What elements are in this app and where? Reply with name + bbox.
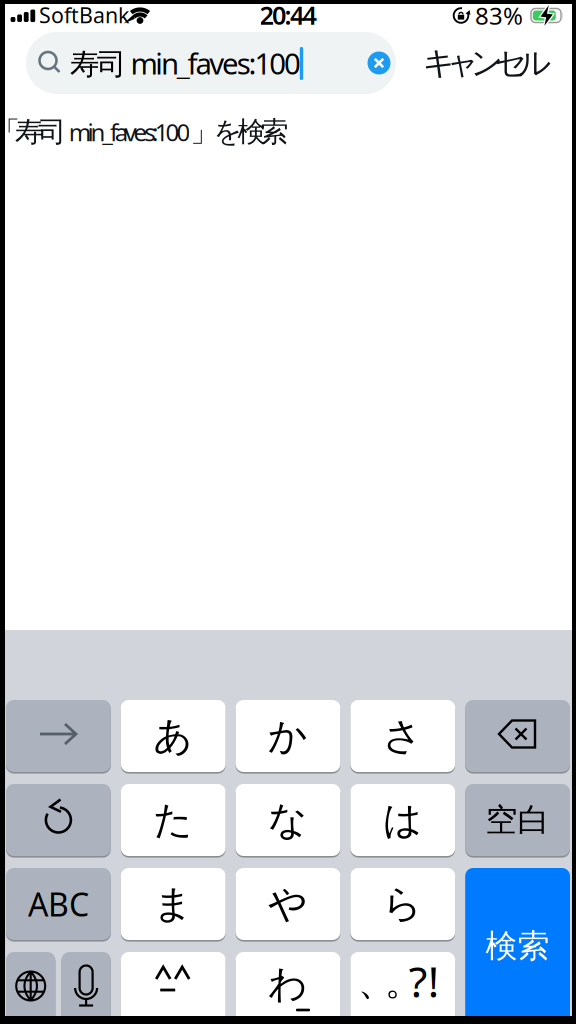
staticText: た <box>153 796 193 844</box>
staticText: ら <box>383 880 423 928</box>
button[interactable]: キャンセル <box>402 46 572 80</box>
button[interactable]: Confirm <box>6 699 111 773</box>
button[interactable]: わ <box>236 951 340 1024</box>
staticText: 空白 <box>486 800 550 840</box>
button[interactable]: な <box>236 783 340 857</box>
button[interactable]: 「寿司 <box>0 100 545 164</box>
staticText: わ <box>268 960 308 1008</box>
staticText: ABC <box>28 883 89 925</box>
staticText: 検索 <box>486 926 550 966</box>
button[interactable]: Dictation <box>61 951 111 1024</box>
button[interactable]: 検索テキストフィールド <box>26 32 396 94</box>
staticText: 20:44 <box>259 0 316 32</box>
staticText: や <box>268 880 308 928</box>
staticText: ?! <box>409 953 439 1009</box>
staticText: 「寿司 <box>0 115 66 149</box>
staticText: あ <box>153 712 193 760</box>
staticText: SoftBank <box>39 1 129 29</box>
button[interactable]: Clear text <box>367 51 390 74</box>
button[interactable]: あ <box>121 699 226 773</box>
button[interactable]: か <box>236 699 340 773</box>
staticText: は <box>383 796 423 844</box>
staticText: キャンセル <box>422 43 551 83</box>
button[interactable]: 、。 <box>350 951 455 1024</box>
staticText: 、。 <box>358 959 422 1005</box>
staticText: ま <box>153 880 193 928</box>
button[interactable]: Dakuten <box>121 951 226 1024</box>
staticText: 」を検索 <box>190 115 288 149</box>
staticText: か <box>268 712 308 760</box>
button[interactable]: ま <box>121 867 226 941</box>
staticText: さ <box>383 712 423 760</box>
button[interactable]: た <box>121 783 226 857</box>
staticText: 83% <box>475 0 523 31</box>
button[interactable]: ら <box>350 867 455 941</box>
staticText: 寿司 min_faves:100 <box>70 43 301 82</box>
button[interactable]: Delete <box>465 699 570 773</box>
button[interactable]: ABC <box>6 867 111 941</box>
staticText: min_faves:100 <box>66 116 190 148</box>
button[interactable]: Next keyboard <box>6 951 55 1024</box>
button[interactable]: は <box>350 783 455 857</box>
staticText: な <box>268 796 308 844</box>
button[interactable]: 空白 <box>465 783 570 857</box>
button[interactable]: や <box>236 867 340 941</box>
button[interactable]: さ <box>350 699 455 773</box>
button[interactable]: Undo <box>6 783 111 857</box>
button[interactable]: 検索 <box>465 868 570 1024</box>
